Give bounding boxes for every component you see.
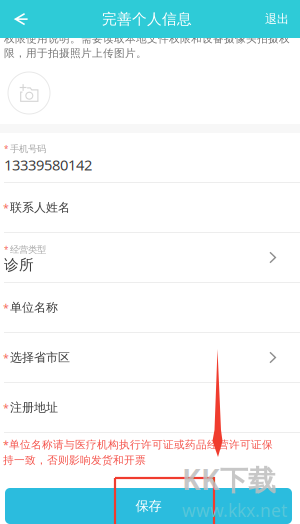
- staticText: 手机号码: [10, 143, 46, 155]
- button[interactable]: Upload photo: [8, 72, 50, 114]
- staticText: *: [3, 200, 9, 215]
- staticText: 退出: [265, 11, 289, 26]
- button[interactable]: Back: [0, 0, 37, 38]
- button[interactable]: 保存: [5, 488, 292, 524]
- staticText: 持一致，否则影响发货和开票: [3, 453, 146, 467]
- staticText: 联系人姓名: [10, 200, 70, 215]
- staticText: 选择省市区: [10, 350, 70, 365]
- staticText: *: [4, 244, 8, 255]
- staticText: *: [4, 144, 8, 154]
- button[interactable]: *: [0, 183, 300, 232]
- staticText: 完善个人信息: [102, 10, 192, 28]
- staticText: *: [3, 350, 9, 365]
- button[interactable]: *: [0, 333, 300, 382]
- button[interactable]: *: [0, 233, 300, 282]
- staticText: KK下载: [182, 460, 276, 498]
- button[interactable]: *: [0, 133, 300, 182]
- staticText: 权限使用说明。需要读取本地文件权限和设备摄像头拍摄权: [4, 32, 290, 45]
- staticText: *单位名称请与医疗机构执行许可证或药品经营许可证保: [3, 437, 273, 451]
- staticText: 保存: [135, 498, 161, 514]
- staticText: *: [3, 400, 9, 415]
- staticText: 限，用于拍摄照片上传图片。: [4, 46, 147, 60]
- staticText: 诊所: [4, 256, 34, 274]
- button[interactable]: *: [0, 383, 300, 432]
- staticText: 13339580142: [4, 155, 92, 175]
- button[interactable]: 退出: [257, 0, 300, 38]
- staticText: www.kkx.net: [182, 498, 287, 522]
- staticText: 注册地址: [10, 400, 58, 415]
- button[interactable]: *: [0, 283, 300, 332]
- staticText: *: [3, 300, 9, 315]
- staticText: 经营类型: [10, 244, 46, 256]
- staticText: 单位名称: [10, 300, 58, 315]
